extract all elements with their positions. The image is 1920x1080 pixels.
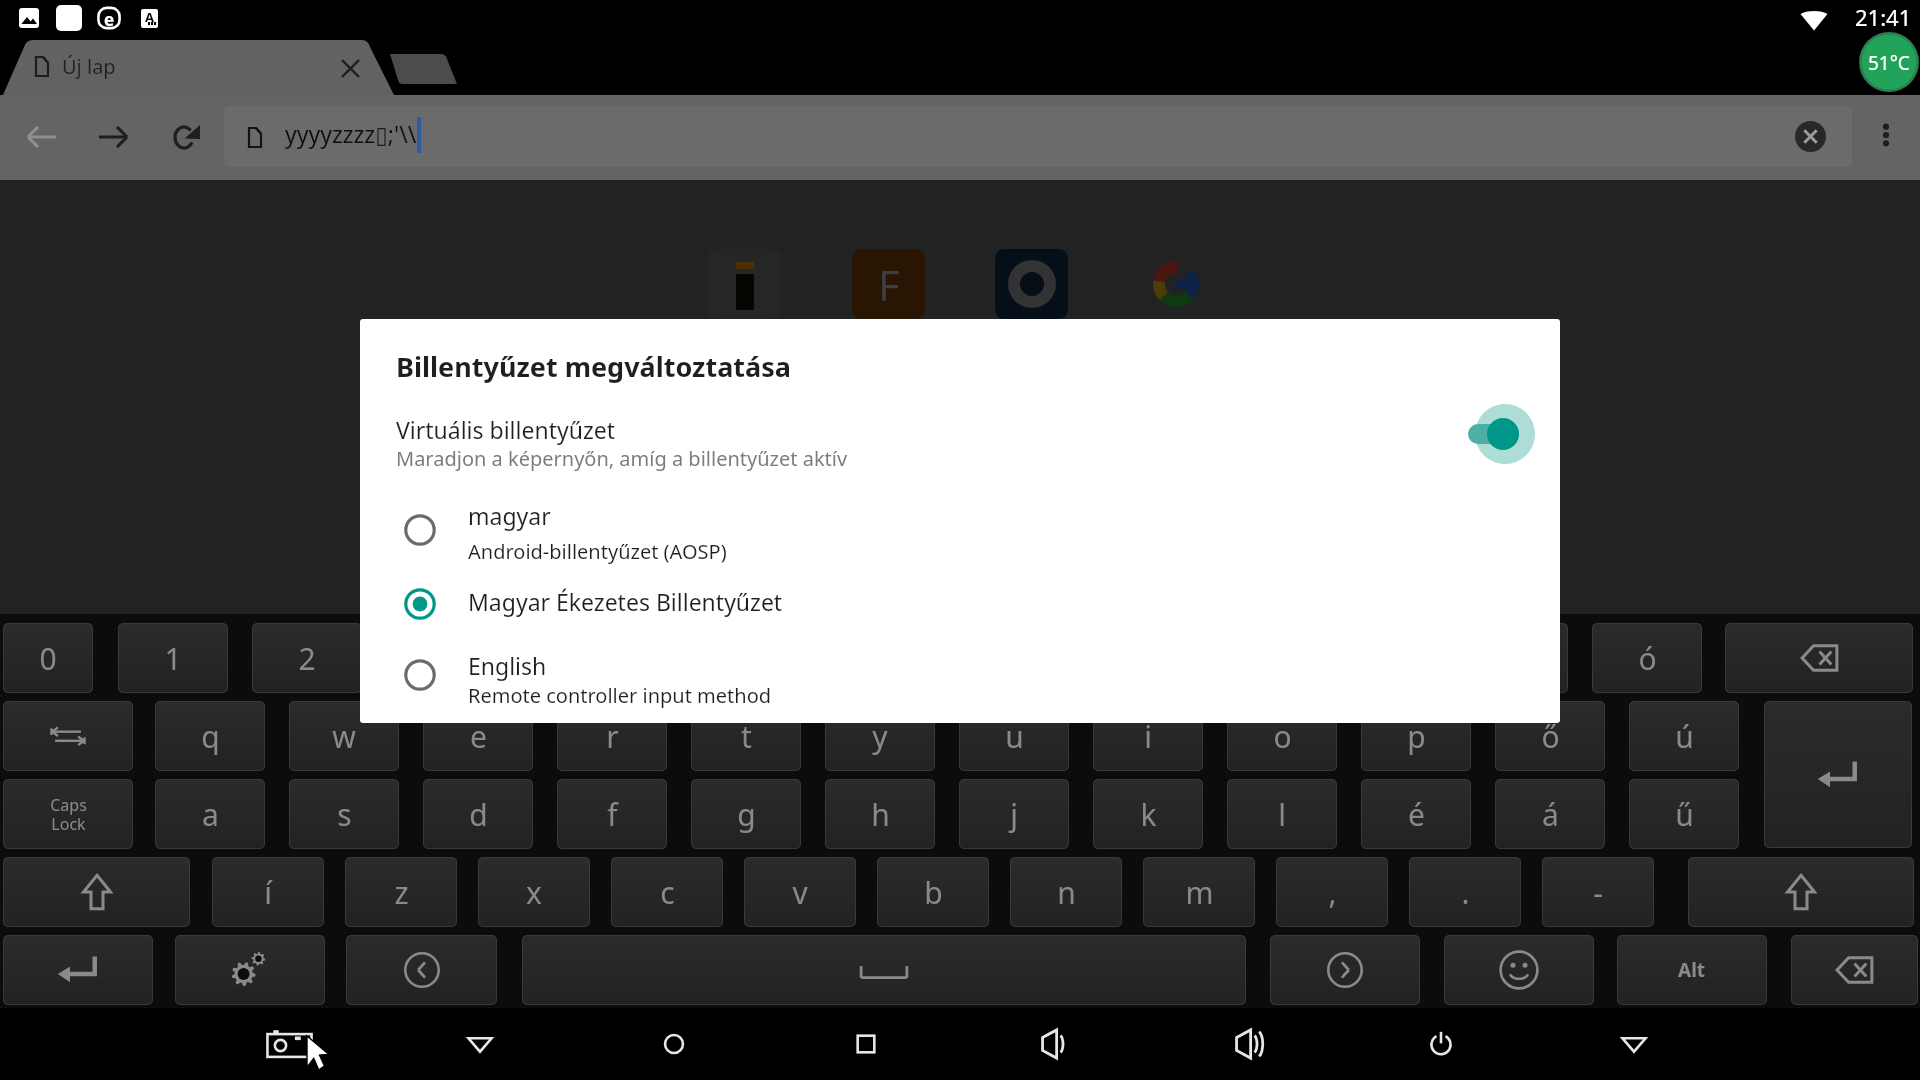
- button[interactable]: Virtuális billentyűzet: [360, 407, 1560, 471]
- button[interactable]: Space: [522, 935, 1246, 1005]
- staticText: 51°C: [1868, 50, 1910, 76]
- button[interactable]: e: [423, 701, 533, 771]
- button[interactable]: 3: [386, 623, 496, 693]
- button[interactable]: g: [691, 779, 801, 849]
- button[interactable]: More options: [1864, 113, 1908, 157]
- button[interactable]: Hide keyboard: [452, 1016, 508, 1072]
- button[interactable]: d: [423, 779, 533, 849]
- button[interactable]: Tab: [3, 701, 133, 771]
- button[interactable]: 5: [654, 623, 764, 693]
- button[interactable]: yyyyzzzz▯;'\\: [224, 106, 1852, 167]
- button[interactable]: Caps Lock: [3, 779, 133, 849]
- button[interactable]: u: [959, 701, 1069, 771]
- button[interactable]: 2: [252, 623, 362, 693]
- staticText: Magyar Ékezetes Billentyűzet: [468, 586, 783, 617]
- button[interactable]: c: [611, 857, 723, 927]
- button[interactable]: z: [345, 857, 457, 927]
- button[interactable]: ü: [1458, 623, 1568, 693]
- staticText: ű: [1675, 794, 1694, 835]
- button[interactable]: ű: [1629, 779, 1739, 849]
- button[interactable]: ú: [1629, 701, 1739, 771]
- staticText: -: [1593, 872, 1603, 913]
- button[interactable]: Next: [1270, 935, 1420, 1005]
- button[interactable]: l: [1227, 779, 1337, 849]
- button[interactable]: n: [1010, 857, 1122, 927]
- button[interactable]: m: [1143, 857, 1255, 927]
- button[interactable]: magyar: [360, 491, 1560, 563]
- staticText: n: [1057, 872, 1076, 913]
- button[interactable]: Shift: [3, 857, 190, 927]
- button[interactable]: ,: [1276, 857, 1388, 927]
- button[interactable]: q: [155, 701, 265, 771]
- button[interactable]: j: [959, 779, 1069, 849]
- button[interactable]: f: [557, 779, 667, 849]
- button[interactable]: Screenshot: [261, 1016, 317, 1072]
- button[interactable]: Home: [646, 1016, 702, 1072]
- staticText: Új lap: [62, 53, 116, 80]
- button[interactable]: p: [1361, 701, 1471, 771]
- staticText: f: [607, 794, 618, 835]
- button[interactable]: Backspace: [1725, 623, 1913, 693]
- button[interactable]: Settings: [175, 935, 325, 1005]
- button[interactable]: Power: [1413, 1016, 1469, 1072]
- button[interactable]: ó: [1592, 623, 1702, 693]
- staticText: c: [660, 872, 675, 913]
- other: Emoji: [1499, 950, 1539, 990]
- button[interactable]: Previous: [346, 935, 497, 1005]
- staticText: Alt: [1678, 957, 1706, 983]
- button[interactable]: ő: [1495, 701, 1605, 771]
- staticText: q: [201, 716, 220, 757]
- button[interactable]: y: [825, 701, 935, 771]
- button[interactable]: h: [825, 779, 935, 849]
- button[interactable]: -: [1542, 857, 1654, 927]
- button[interactable]: Enter: [1764, 701, 1912, 848]
- button[interactable]: 4: [520, 623, 630, 693]
- button[interactable]: .: [1409, 857, 1521, 927]
- button[interactable]: s: [289, 779, 399, 849]
- button[interactable]: é: [1361, 779, 1471, 849]
- button[interactable]: Magyar Ékezetes Billentyűzet: [360, 573, 1560, 625]
- button[interactable]: i: [1093, 701, 1203, 771]
- button[interactable]: a: [155, 779, 265, 849]
- staticText: 21:41: [1855, 2, 1912, 32]
- staticText: o: [1273, 716, 1292, 757]
- button[interactable]: x: [478, 857, 590, 927]
- button[interactable]: v: [744, 857, 856, 927]
- button[interactable]: Reload: [163, 113, 211, 161]
- button[interactable]: 1: [118, 623, 228, 693]
- button[interactable]: o: [1227, 701, 1337, 771]
- staticText: A: [145, 9, 154, 26]
- button[interactable]: Enter: [3, 935, 153, 1005]
- staticText: k: [1140, 794, 1157, 835]
- button[interactable]: Backspace: [1791, 935, 1918, 1005]
- button[interactable]: t: [691, 701, 801, 771]
- button[interactable]: Hide keyboard: [1606, 1016, 1662, 1072]
- button[interactable]: Clear: [1792, 118, 1829, 155]
- button[interactable]: k: [1093, 779, 1203, 849]
- button[interactable]: í: [212, 857, 324, 927]
- button[interactable]: 0: [3, 623, 93, 693]
- button[interactable]: b: [877, 857, 989, 927]
- button[interactable]: Forward: [89, 113, 137, 161]
- button[interactable]: Alt: [1617, 935, 1767, 1005]
- button[interactable]: Emoji: [1444, 935, 1594, 1005]
- staticText: d: [469, 794, 488, 835]
- button[interactable]: Close tab: [330, 48, 370, 88]
- button[interactable]: Volume up: [1222, 1016, 1278, 1072]
- button[interactable]: r: [557, 701, 667, 771]
- staticText: h: [871, 794, 890, 835]
- staticText: 1: [164, 638, 182, 679]
- button[interactable]: English: [360, 641, 1560, 715]
- button[interactable]: á: [1495, 779, 1605, 849]
- button[interactable]: Volume down: [1028, 1016, 1084, 1072]
- button[interactable]: w: [289, 701, 399, 771]
- button[interactable]: Back: [18, 113, 66, 161]
- button[interactable]: Shift: [1688, 857, 1914, 927]
- button[interactable]: Recents: [838, 1016, 894, 1072]
